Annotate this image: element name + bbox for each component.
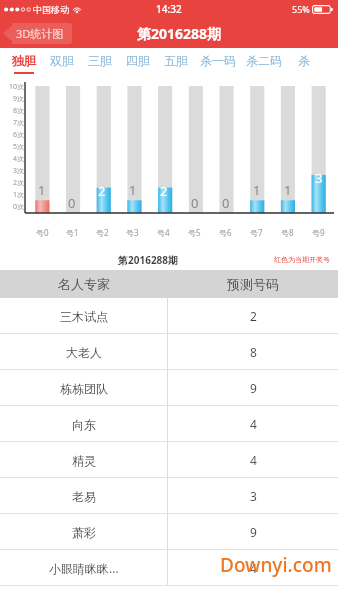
staticText: 第2016288期 [137, 24, 222, 43]
staticText: 精灵 [72, 453, 96, 468]
staticText: 8 [250, 344, 257, 360]
staticText: 0次 [12, 202, 24, 212]
staticText: 杀一码 [200, 53, 236, 68]
staticText: 栋栋团队 [60, 381, 108, 396]
staticText: 55% [292, 3, 310, 15]
staticText: 萧彩 [72, 525, 96, 540]
button[interactable]: 三胆 [81, 48, 119, 79]
staticText: 2 [98, 182, 106, 200]
button[interactable]: 三木试点 [0, 298, 338, 334]
button[interactable]: 萧彩 [0, 514, 338, 550]
staticText: 老易 [72, 489, 96, 504]
button[interactable]: 独胆 [5, 48, 43, 79]
button[interactable]: 小眼睛眯眯... [0, 550, 338, 586]
staticText: 2次 [12, 178, 24, 188]
staticText: 1 [38, 181, 46, 199]
button[interactable]: 五胆 [157, 48, 195, 79]
staticText: 10次 [8, 82, 24, 92]
button[interactable]: 返回 3D统计图 [3, 23, 72, 44]
staticText: 14:32 [156, 2, 182, 16]
staticText: 2 [250, 308, 257, 324]
button[interactable]: 精灵 [0, 442, 338, 478]
button[interactable]: 大老人 [0, 334, 338, 370]
staticText: 1 [129, 181, 137, 199]
button[interactable]: 双胆 [43, 48, 81, 79]
staticText: 9次 [12, 94, 24, 104]
button[interactable]: 四胆 [119, 48, 157, 79]
staticText: 4次 [12, 154, 24, 164]
staticText: 四胆 [126, 53, 150, 68]
staticText: 号8 [281, 227, 294, 238]
staticText: 中国移动 [33, 4, 69, 15]
staticText: 三胆 [88, 53, 112, 68]
staticText: 双胆 [50, 53, 74, 68]
staticText: 三木试点 [60, 309, 108, 324]
staticText: 2 [160, 182, 168, 200]
button[interactable]: 老易 [0, 478, 338, 514]
staticText: 3 [250, 488, 257, 504]
staticText: 号3 [126, 227, 139, 238]
staticText: 独胆 [12, 53, 36, 68]
staticText: 1次 [12, 190, 24, 200]
staticText: 9 [250, 524, 257, 540]
staticText: 号6 [219, 227, 232, 238]
button[interactable]: 杀二码 [241, 48, 287, 79]
staticText: Downyi.com [220, 552, 332, 578]
staticText: 3次 [12, 166, 24, 176]
staticText: 8次 [12, 106, 24, 116]
staticText: 0 [222, 194, 230, 212]
staticText: 4 [250, 560, 257, 576]
staticText: 杀二码 [246, 53, 282, 68]
staticText: 五胆 [164, 53, 188, 68]
staticText: 向东 [72, 417, 96, 432]
staticText: 4 [250, 416, 257, 432]
staticText: 红色为当期开奖号 [274, 255, 330, 264]
button[interactable]: 向东 [0, 406, 338, 442]
staticText: 3 [315, 169, 323, 187]
staticText: 号5 [188, 227, 201, 238]
staticText: 0 [191, 194, 199, 212]
staticText: 0 [68, 194, 76, 212]
staticText: 小眼睛眯眯... [49, 560, 119, 576]
staticText: 号7 [250, 227, 263, 238]
staticText: 大老人 [66, 345, 102, 360]
staticText: 名人专家 [58, 276, 110, 292]
button[interactable]: 栋栋团队 [0, 370, 338, 406]
staticText: 4 [250, 452, 257, 468]
staticText: 号1 [66, 227, 79, 238]
staticText: 6次 [12, 130, 24, 140]
staticText: 1 [284, 181, 292, 199]
staticText: 号0 [36, 227, 49, 238]
staticText: 第2016288期 [118, 253, 179, 267]
button[interactable]: 杀 [287, 48, 321, 79]
button[interactable]: 杀一码 [195, 48, 241, 79]
staticText: 7次 [12, 118, 24, 128]
staticText: 号9 [312, 227, 325, 238]
staticText: 9 [250, 380, 257, 396]
staticText: 预测号码 [227, 276, 279, 292]
staticText: 5次 [12, 142, 24, 152]
staticText: 号4 [157, 227, 170, 238]
staticText: 3D统计图 [16, 26, 64, 41]
staticText: 1 [253, 181, 261, 199]
staticText: 杀 [298, 53, 310, 68]
staticText: 号2 [96, 227, 109, 238]
